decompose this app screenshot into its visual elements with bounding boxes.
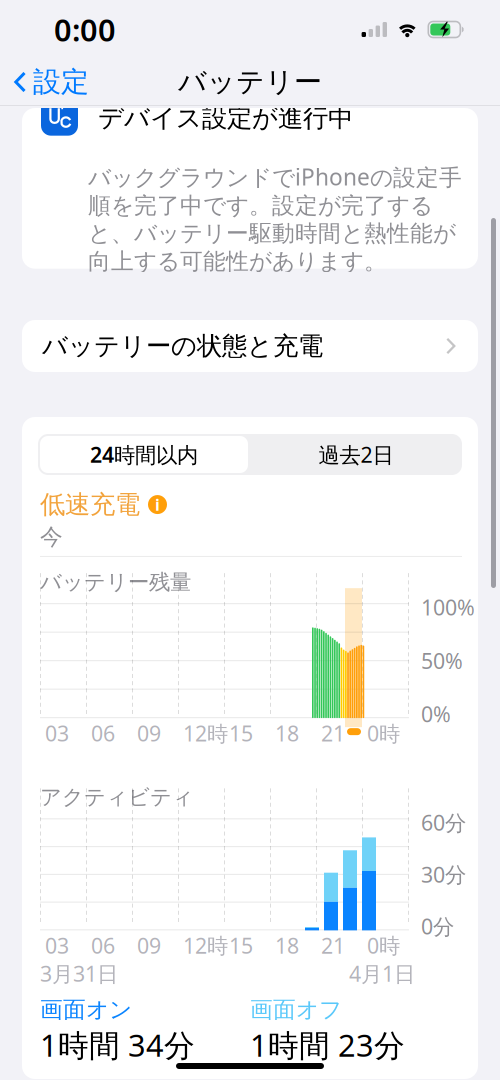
staticText: 100% bbox=[421, 593, 475, 621]
staticText: 21 bbox=[321, 719, 345, 747]
staticText: 過去2日 bbox=[318, 440, 393, 469]
button[interactable]: 24時間以内 bbox=[38, 434, 250, 475]
staticText: 0時 bbox=[367, 931, 400, 959]
button[interactable]: 過去2日 bbox=[250, 434, 462, 475]
staticText: 低速充電 bbox=[40, 489, 140, 520]
staticText: 1時間 23分 bbox=[250, 1024, 405, 1065]
staticText: 設定 bbox=[33, 65, 89, 99]
staticText: 50% bbox=[421, 646, 463, 675]
staticText: 0:00 bbox=[54, 9, 116, 50]
staticText: 画面オフ bbox=[250, 996, 342, 1023]
staticText: 06 bbox=[91, 719, 115, 747]
staticText: 24時間以内 bbox=[90, 440, 198, 469]
staticText: アクティビティ bbox=[40, 784, 194, 810]
staticText: 4月1日 bbox=[349, 959, 415, 988]
staticText: 1時間 34分 bbox=[40, 1024, 195, 1065]
staticText: 3月31日 bbox=[40, 959, 118, 988]
staticText: 30分 bbox=[421, 860, 466, 888]
staticText: 15 bbox=[229, 931, 253, 959]
staticText: i bbox=[155, 494, 160, 515]
staticText: 今 bbox=[40, 523, 63, 551]
staticText: 0分 bbox=[421, 912, 454, 940]
staticText: バッテリー残量 bbox=[40, 569, 191, 595]
staticText: 0% bbox=[421, 700, 451, 728]
staticText: 18 bbox=[275, 719, 299, 747]
staticText: 画面オン bbox=[40, 996, 132, 1023]
staticText: デバイス設定が進行中 bbox=[98, 103, 353, 134]
staticText: 15 bbox=[229, 719, 253, 747]
staticText: バッテリーの状態と充電 bbox=[42, 330, 323, 361]
staticText: 0時 bbox=[367, 719, 400, 747]
staticText: 03 bbox=[45, 719, 69, 747]
staticText: バックグラウンドでiPhoneの設定手順を完了中です。設定が完了すると、バッテリ… bbox=[88, 162, 462, 275]
staticText: 18 bbox=[275, 931, 299, 959]
staticText: 06 bbox=[91, 931, 115, 959]
staticText: 21 bbox=[321, 931, 345, 959]
staticText: 03 bbox=[45, 931, 69, 959]
staticText: 12時 bbox=[183, 931, 228, 959]
staticText: 12時 bbox=[183, 719, 228, 747]
button[interactable]: バッテリーの状態と充電 bbox=[22, 320, 478, 372]
staticText: 09 bbox=[137, 931, 161, 959]
staticText: バッテリー bbox=[178, 65, 322, 99]
staticText: 60分 bbox=[421, 808, 466, 837]
staticText: 09 bbox=[137, 719, 161, 747]
button[interactable]: 設定 bbox=[0, 57, 89, 107]
